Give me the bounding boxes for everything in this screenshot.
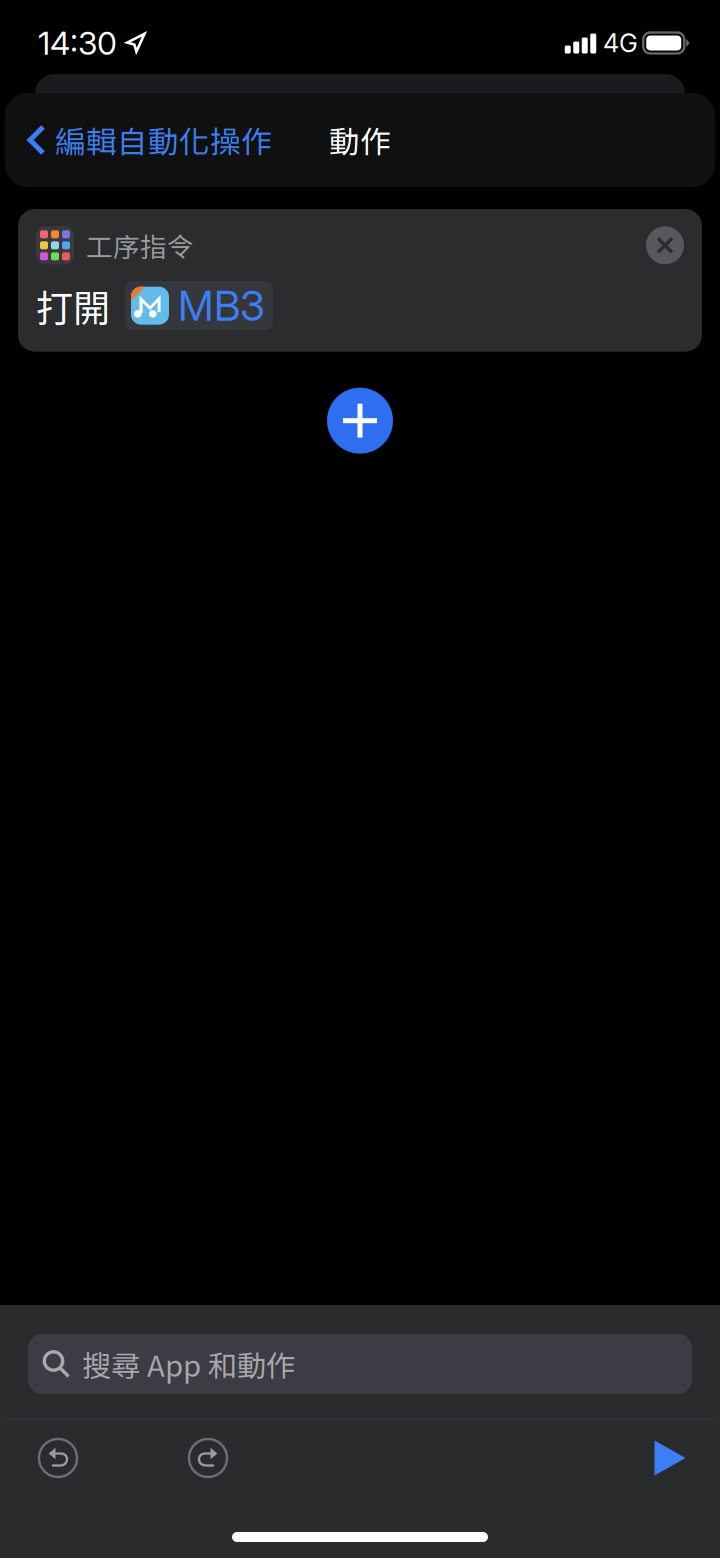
button[interactable]: Redo — [189, 1439, 227, 1477]
button[interactable]: Remove action — [646, 226, 684, 264]
staticText: 打開 — [36, 279, 110, 333]
button[interactable]: Add action — [327, 388, 393, 454]
button[interactable]: 編輯自動化操作 — [5, 109, 286, 171]
button[interactable]: 搜尋 App 和動作 — [28, 1334, 692, 1394]
staticText: 工序指令 — [86, 226, 194, 265]
staticText: 編輯自動化操作 — [55, 118, 272, 162]
staticText: 動作 — [329, 118, 391, 162]
staticText: 14:30 — [38, 24, 117, 62]
staticText: MB3 — [178, 281, 265, 331]
button[interactable]: Run shortcut — [651, 1439, 689, 1477]
staticText: 4G — [603, 28, 638, 58]
staticText: 搜尋 App 和動作 — [82, 1343, 295, 1385]
button[interactable]: Undo — [39, 1439, 77, 1477]
